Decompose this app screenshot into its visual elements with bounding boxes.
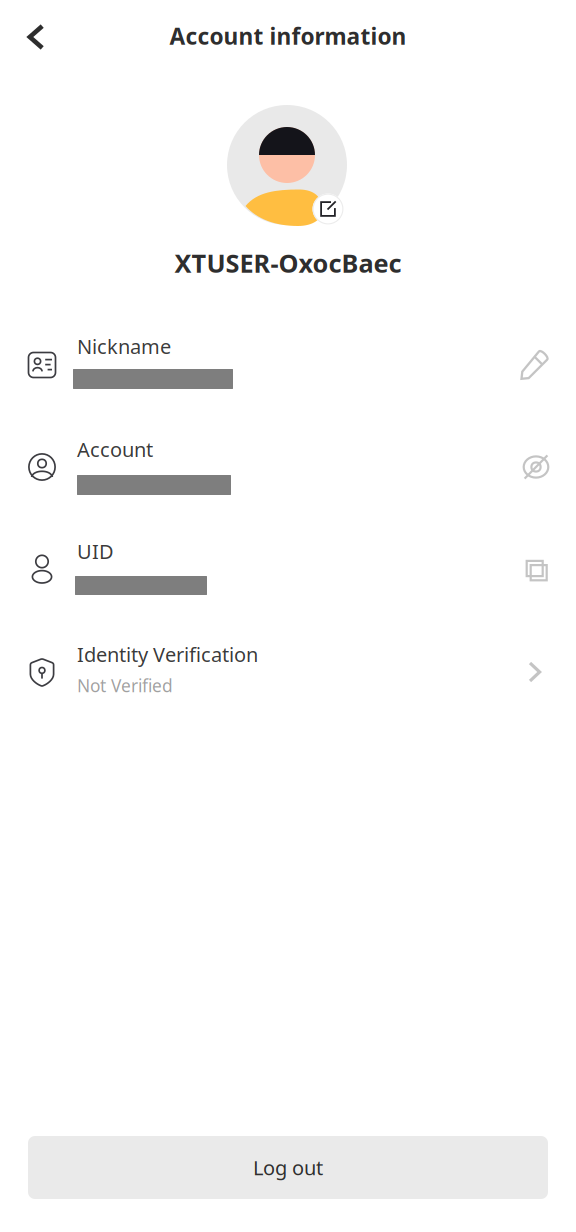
button[interactable]: Identity Verification xyxy=(28,645,556,719)
button[interactable]: Show account xyxy=(512,443,560,491)
staticText: Account xyxy=(77,436,153,463)
button[interactable]: Back xyxy=(10,11,62,63)
button[interactable]: Log out xyxy=(28,1136,548,1199)
staticText: XTUSER-OxocBaec xyxy=(174,246,401,280)
staticText: Log out xyxy=(253,1154,323,1181)
button[interactable]: Edit profile picture xyxy=(306,187,350,231)
staticText: Identity Verification xyxy=(77,641,258,668)
staticText: Nickname xyxy=(77,333,171,360)
button[interactable]: Copy UID xyxy=(515,549,563,597)
button[interactable]: Edit nickname xyxy=(511,341,559,389)
staticText: Not Verified xyxy=(77,674,173,697)
staticText: UID xyxy=(77,538,114,565)
staticText: Account information xyxy=(169,21,406,51)
